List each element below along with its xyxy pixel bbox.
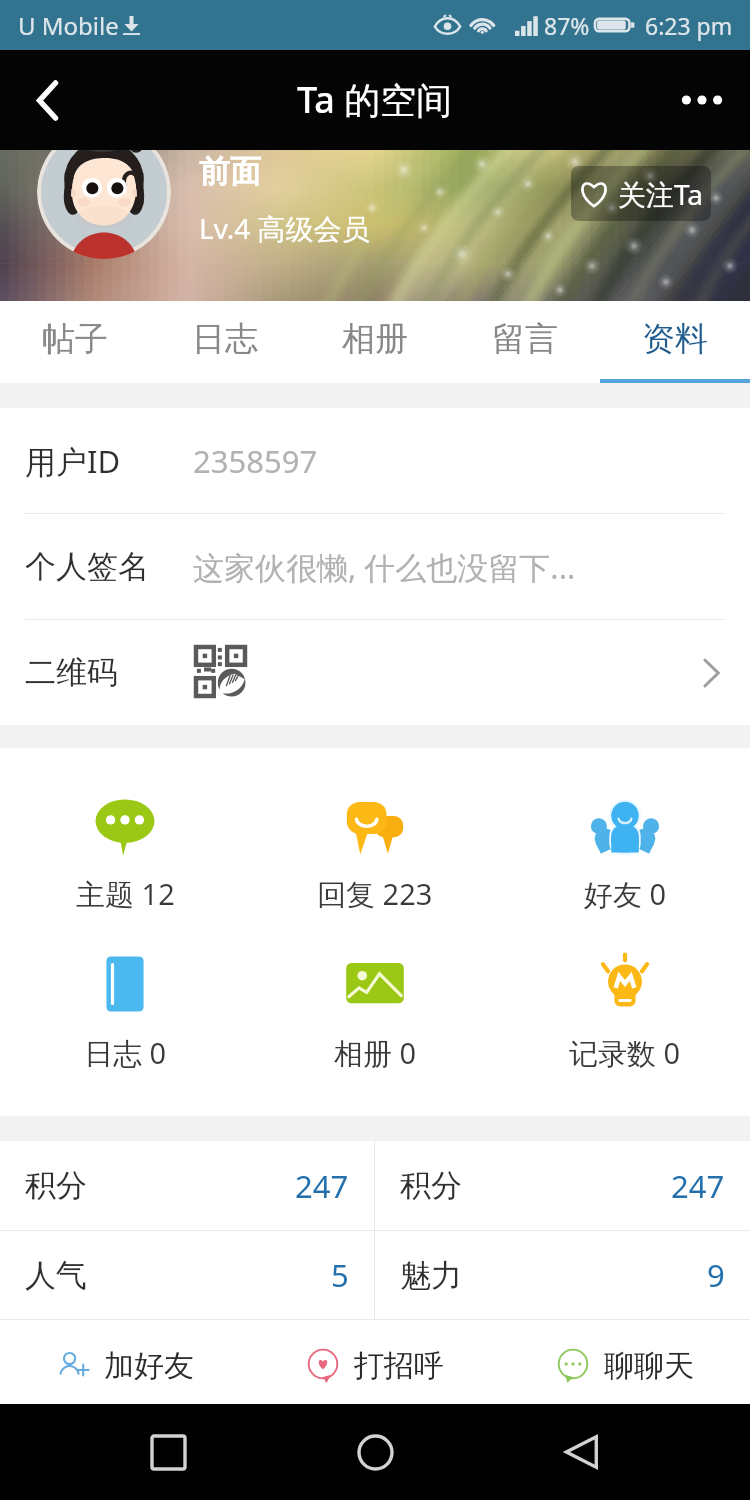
button[interactable]: 聊聊天: [500, 1320, 750, 1404]
staticText: 5: [331, 1254, 349, 1296]
button[interactable]: 二维码: [0, 620, 750, 725]
button[interactable]: Home: [327, 1404, 423, 1500]
staticText: 247: [671, 1165, 725, 1207]
staticText: U Mobile: [18, 9, 119, 42]
button[interactable]: 打招呼: [250, 1320, 500, 1404]
button[interactable]: 帖子: [0, 301, 150, 383]
staticText: 日志: [192, 318, 258, 360]
button[interactable]: 加好友: [0, 1320, 250, 1404]
staticText: 个人签名: [25, 547, 149, 586]
button[interactable]: Back: [0, 50, 92, 150]
button[interactable]: 记录数 0: [500, 952, 750, 1073]
button[interactable]: 回复 223: [250, 793, 500, 914]
button[interactable]: 好友 0: [500, 793, 750, 914]
button[interactable]: 魅力: [375, 1231, 750, 1319]
staticText: 魅力: [400, 1256, 462, 1295]
staticText: 好友 0: [584, 874, 667, 914]
staticText: 9: [707, 1254, 725, 1296]
staticText: 前面: [199, 152, 261, 191]
staticText: 247: [295, 1165, 349, 1207]
button[interactable]: 留言: [450, 301, 600, 383]
staticText: 打招呼: [354, 1347, 444, 1385]
button[interactable]: 相册: [300, 301, 450, 383]
staticText: 2358597: [193, 440, 318, 482]
staticText: 记录数 0: [569, 1033, 681, 1073]
staticText: 主题 12: [76, 874, 175, 914]
staticText: 这家伙很懒, 什么也没留下...: [193, 546, 576, 588]
staticText: 关注Ta: [618, 175, 704, 213]
staticText: 日志 0: [84, 1033, 167, 1073]
button[interactable]: 积分: [375, 1141, 750, 1230]
staticText: 加好友: [104, 1347, 194, 1385]
button[interactable]: 资料: [600, 301, 750, 383]
button[interactable]: 用户ID: [0, 408, 750, 513]
staticText: 二维码: [25, 653, 118, 692]
staticText: 积分: [400, 1166, 462, 1205]
staticText: 相册 0: [334, 1033, 417, 1073]
button[interactable]: 积分: [0, 1141, 374, 1230]
button[interactable]: 日志 0: [0, 952, 250, 1073]
button[interactable]: 相册 0: [250, 952, 500, 1073]
button[interactable]: 主题 12: [0, 793, 250, 914]
staticText: 87%: [544, 10, 590, 41]
staticText: 积分: [25, 1166, 87, 1205]
button[interactable]: 人气: [0, 1231, 374, 1319]
staticText: 留言: [492, 318, 558, 360]
staticText: Ta 的空间: [297, 75, 453, 124]
staticText: 6:23 pm: [645, 10, 733, 41]
staticText: Lv.4 高级会员: [199, 209, 370, 247]
button[interactable]: Back: [534, 1404, 630, 1500]
button[interactable]: More options: [654, 50, 750, 150]
staticText: 人气: [25, 1256, 87, 1295]
staticText: 用户ID: [25, 440, 121, 482]
staticText: 帖子: [42, 318, 108, 360]
button[interactable]: Avatar: [37, 150, 171, 259]
button[interactable]: 日志: [150, 301, 300, 383]
staticText: 资料: [642, 318, 708, 360]
staticText: 聊聊天: [604, 1347, 694, 1385]
button[interactable]: 关注Ta: [571, 166, 711, 221]
button[interactable]: 个人签名: [0, 514, 750, 619]
staticText: 相册: [342, 318, 408, 360]
staticText: 回复 223: [317, 874, 433, 914]
button[interactable]: Recents: [120, 1404, 216, 1500]
